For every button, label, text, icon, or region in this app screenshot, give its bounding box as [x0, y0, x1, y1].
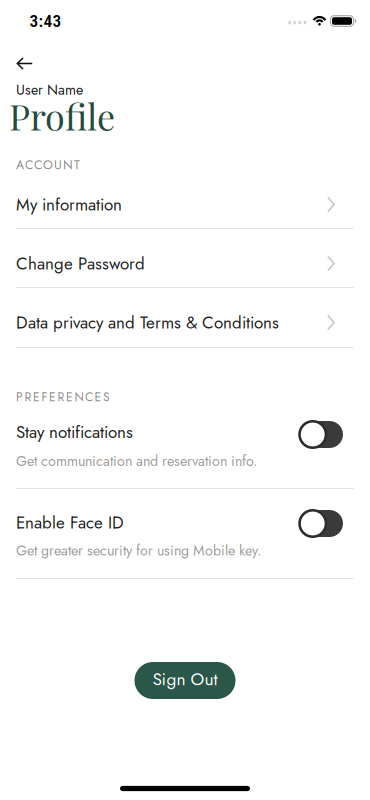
button[interactable]: Sign Out [134, 662, 235, 699]
button[interactable]: Enable Face ID [299, 510, 343, 537]
staticText: 3:43 [29, 11, 61, 31]
staticText: Get communication and reservation info. [16, 451, 257, 471]
button[interactable]: Back [16, 57, 33, 70]
staticText: Get greater security for using Mobile ke… [16, 540, 261, 561]
staticText: User Name [16, 80, 83, 100]
button[interactable]: Stay notifications [299, 421, 343, 448]
staticText: PREFERENCES [16, 388, 110, 406]
staticText: Sign Out [152, 667, 217, 692]
staticText: ACCOUNT [16, 156, 80, 174]
button[interactable]: Change Password [0, 239, 370, 287]
button[interactable]: Data privacy and Terms & Conditions [0, 298, 370, 346]
button[interactable]: My information [0, 180, 370, 228]
staticText: Profile [9, 91, 115, 139]
staticText: Stay notifications [16, 420, 133, 444]
staticText: Data privacy and Terms & Conditions [16, 310, 279, 335]
staticText: Change Password [16, 251, 145, 276]
staticText: Enable Face ID [16, 510, 124, 535]
staticText: My information [16, 192, 122, 217]
